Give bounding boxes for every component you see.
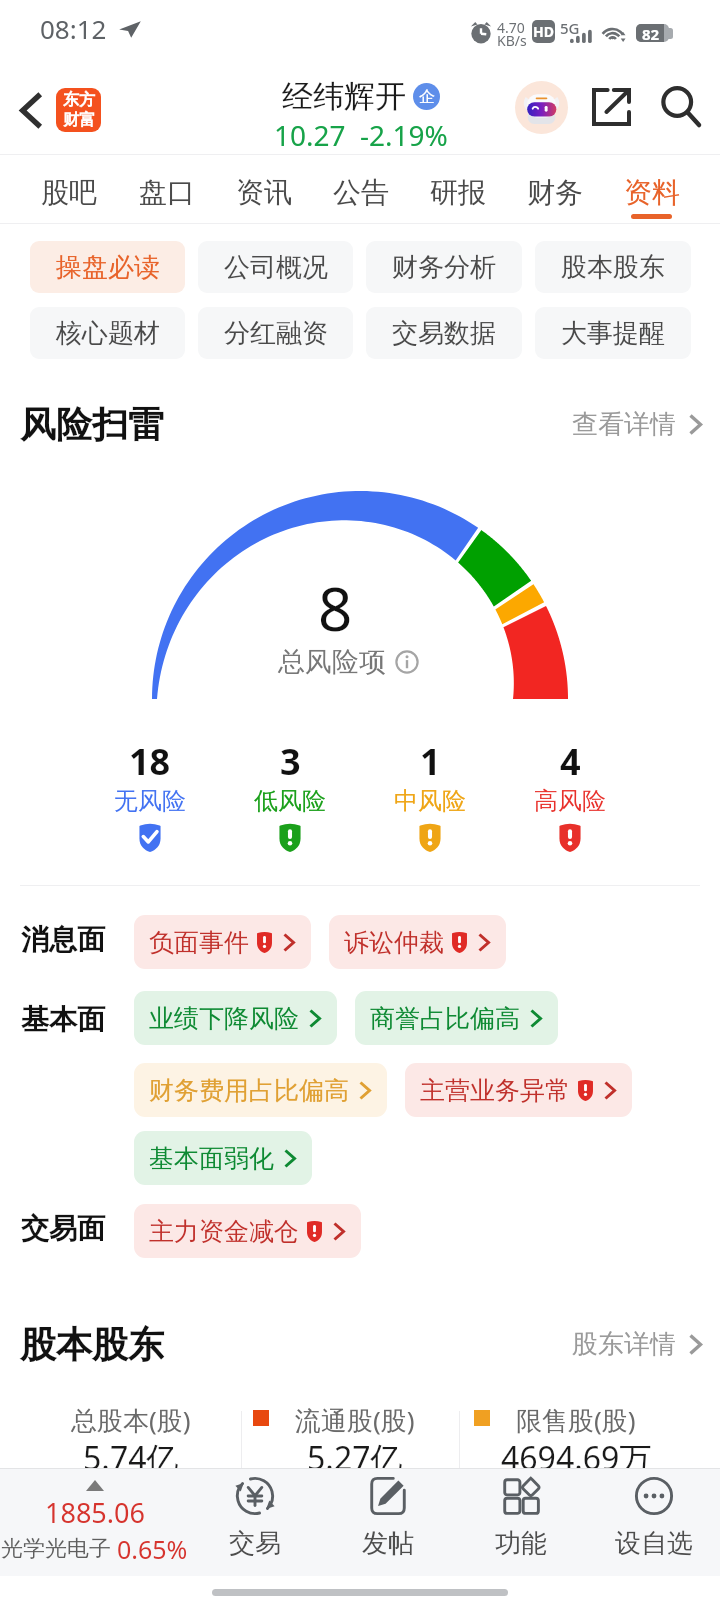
button[interactable]: 大事提醒	[535, 307, 691, 359]
staticText: 公告	[333, 175, 389, 210]
staticText: 查看详情	[572, 408, 676, 441]
staticText: KB/s	[497, 31, 527, 50]
staticText: 光学光电子	[1, 1535, 111, 1563]
staticText: 82	[642, 24, 660, 42]
button[interactable]: AI assistant	[503, 76, 579, 138]
button[interactable]: 研报	[409, 155, 506, 224]
button[interactable]: 诉讼仲裁	[329, 915, 506, 969]
button[interactable]: 资料	[603, 155, 700, 224]
button[interactable]: 主力资金减仓	[134, 1204, 361, 1258]
button[interactable]: 负面事件	[134, 915, 311, 969]
staticText: 财务费用占比偏高	[149, 1075, 349, 1106]
button[interactable]: 流通股(股)	[245, 1400, 465, 1472]
button[interactable]: 资讯	[215, 155, 312, 224]
staticText: 5.27亿	[307, 1436, 403, 1480]
staticText: 10.27	[274, 116, 346, 154]
staticText: 东方	[63, 90, 95, 110]
staticText: 18	[129, 737, 171, 786]
staticText: 5.74亿	[83, 1436, 179, 1480]
staticText: 限售股(股)	[516, 1402, 636, 1438]
button[interactable]: 商誉占比偏高	[355, 991, 558, 1045]
staticText: 4	[560, 737, 581, 786]
staticText: 低风险	[254, 786, 326, 816]
button[interactable]: 基本面弱化	[134, 1131, 312, 1185]
staticText: -2.19%	[360, 116, 448, 154]
staticText: 主营业务异常	[420, 1075, 570, 1106]
staticText: 消息面	[21, 922, 105, 957]
staticText: 总风险项	[278, 645, 386, 679]
staticText: 主力资金减仓	[149, 1216, 299, 1247]
staticText: 发帖	[362, 1527, 414, 1560]
button[interactable]: 分红融资	[198, 307, 353, 359]
staticText: 诉讼仲裁	[344, 927, 444, 958]
staticText: 交易数据	[392, 317, 496, 350]
button[interactable]: 发帖	[321, 1469, 454, 1576]
staticText: 交易	[229, 1527, 281, 1560]
staticText: 财富	[63, 110, 95, 130]
staticText: 中风险	[394, 786, 466, 816]
button[interactable]: 功能	[454, 1469, 587, 1576]
staticText: 1885.06	[45, 1494, 145, 1531]
button[interactable]: 财务费用占比偏高	[134, 1063, 387, 1117]
staticText: 财务	[527, 175, 583, 210]
button[interactable]: 交易数据	[366, 307, 522, 359]
staticText: 高风险	[534, 786, 606, 816]
staticText: 操盘必读	[56, 251, 160, 284]
staticText: 股本股东	[561, 251, 665, 284]
button[interactable]: Eastmoney home	[56, 88, 101, 132]
staticText: 风险扫雷	[20, 402, 164, 447]
button[interactable]: 业绩下降风险	[134, 991, 337, 1045]
button[interactable]: 4	[500, 737, 640, 852]
staticText: 0.65%	[117, 1532, 188, 1566]
button[interactable]: 操盘必读	[30, 241, 185, 293]
button[interactable]: 设自选	[587, 1469, 720, 1576]
staticText: 3	[280, 737, 301, 786]
staticText: 1	[420, 737, 441, 786]
staticText: 公司概况	[224, 251, 328, 284]
staticText: 8	[318, 567, 353, 649]
button[interactable]: 主营业务异常	[405, 1063, 632, 1117]
button[interactable]: 财务分析	[366, 241, 522, 293]
staticText: 08:12	[40, 11, 107, 46]
button[interactable]: 盘口	[118, 155, 215, 224]
staticText: 总股本(股)	[71, 1402, 191, 1438]
button[interactable]: Search	[650, 76, 712, 138]
button[interactable]: 总股本(股)	[21, 1400, 241, 1472]
button[interactable]: 核心题材	[30, 307, 185, 359]
button[interactable]: 公告	[312, 155, 409, 224]
button[interactable]: 财务	[506, 155, 603, 224]
staticText: 负面事件	[149, 927, 249, 958]
staticText: 研报	[430, 175, 486, 210]
staticText: 5G	[560, 18, 580, 38]
button[interactable]: 1885.06	[0, 1469, 188, 1576]
staticText: 功能	[495, 1527, 547, 1560]
staticText: 盘口	[139, 175, 195, 210]
staticText: 业绩下降风险	[149, 1003, 299, 1034]
staticText: 设自选	[615, 1527, 693, 1560]
button[interactable]: 交易	[188, 1469, 321, 1576]
staticText: 大事提醒	[561, 317, 665, 350]
staticText: 4694.69万	[501, 1436, 652, 1480]
button[interactable]: 18	[80, 737, 220, 852]
staticText: 资料	[624, 175, 680, 210]
staticText: 股东详情	[572, 1328, 676, 1361]
button[interactable]: 股吧	[20, 155, 118, 224]
staticText: 无风险	[114, 786, 186, 816]
staticText: 企	[419, 87, 435, 107]
staticText: 交易面	[21, 1211, 105, 1246]
button[interactable]: Back	[5, 84, 57, 136]
button[interactable]: 股东详情	[548, 1320, 720, 1369]
staticText: 资讯	[236, 175, 292, 210]
button[interactable]: 股本股东	[535, 241, 691, 293]
button[interactable]: Share	[579, 76, 643, 138]
staticText: 经纬辉开	[282, 77, 406, 116]
button[interactable]: 限售股(股)	[466, 1400, 686, 1472]
button[interactable]: 查看详情	[548, 400, 720, 449]
staticText: 商誉占比偏高	[370, 1003, 520, 1034]
button[interactable]: 3	[220, 737, 360, 852]
button[interactable]: 公司概况	[198, 241, 353, 293]
staticText: HD	[533, 22, 554, 41]
button[interactable]: 1	[360, 737, 500, 852]
staticText: 核心题材	[56, 317, 160, 350]
staticText: 基本面弱化	[149, 1143, 274, 1174]
